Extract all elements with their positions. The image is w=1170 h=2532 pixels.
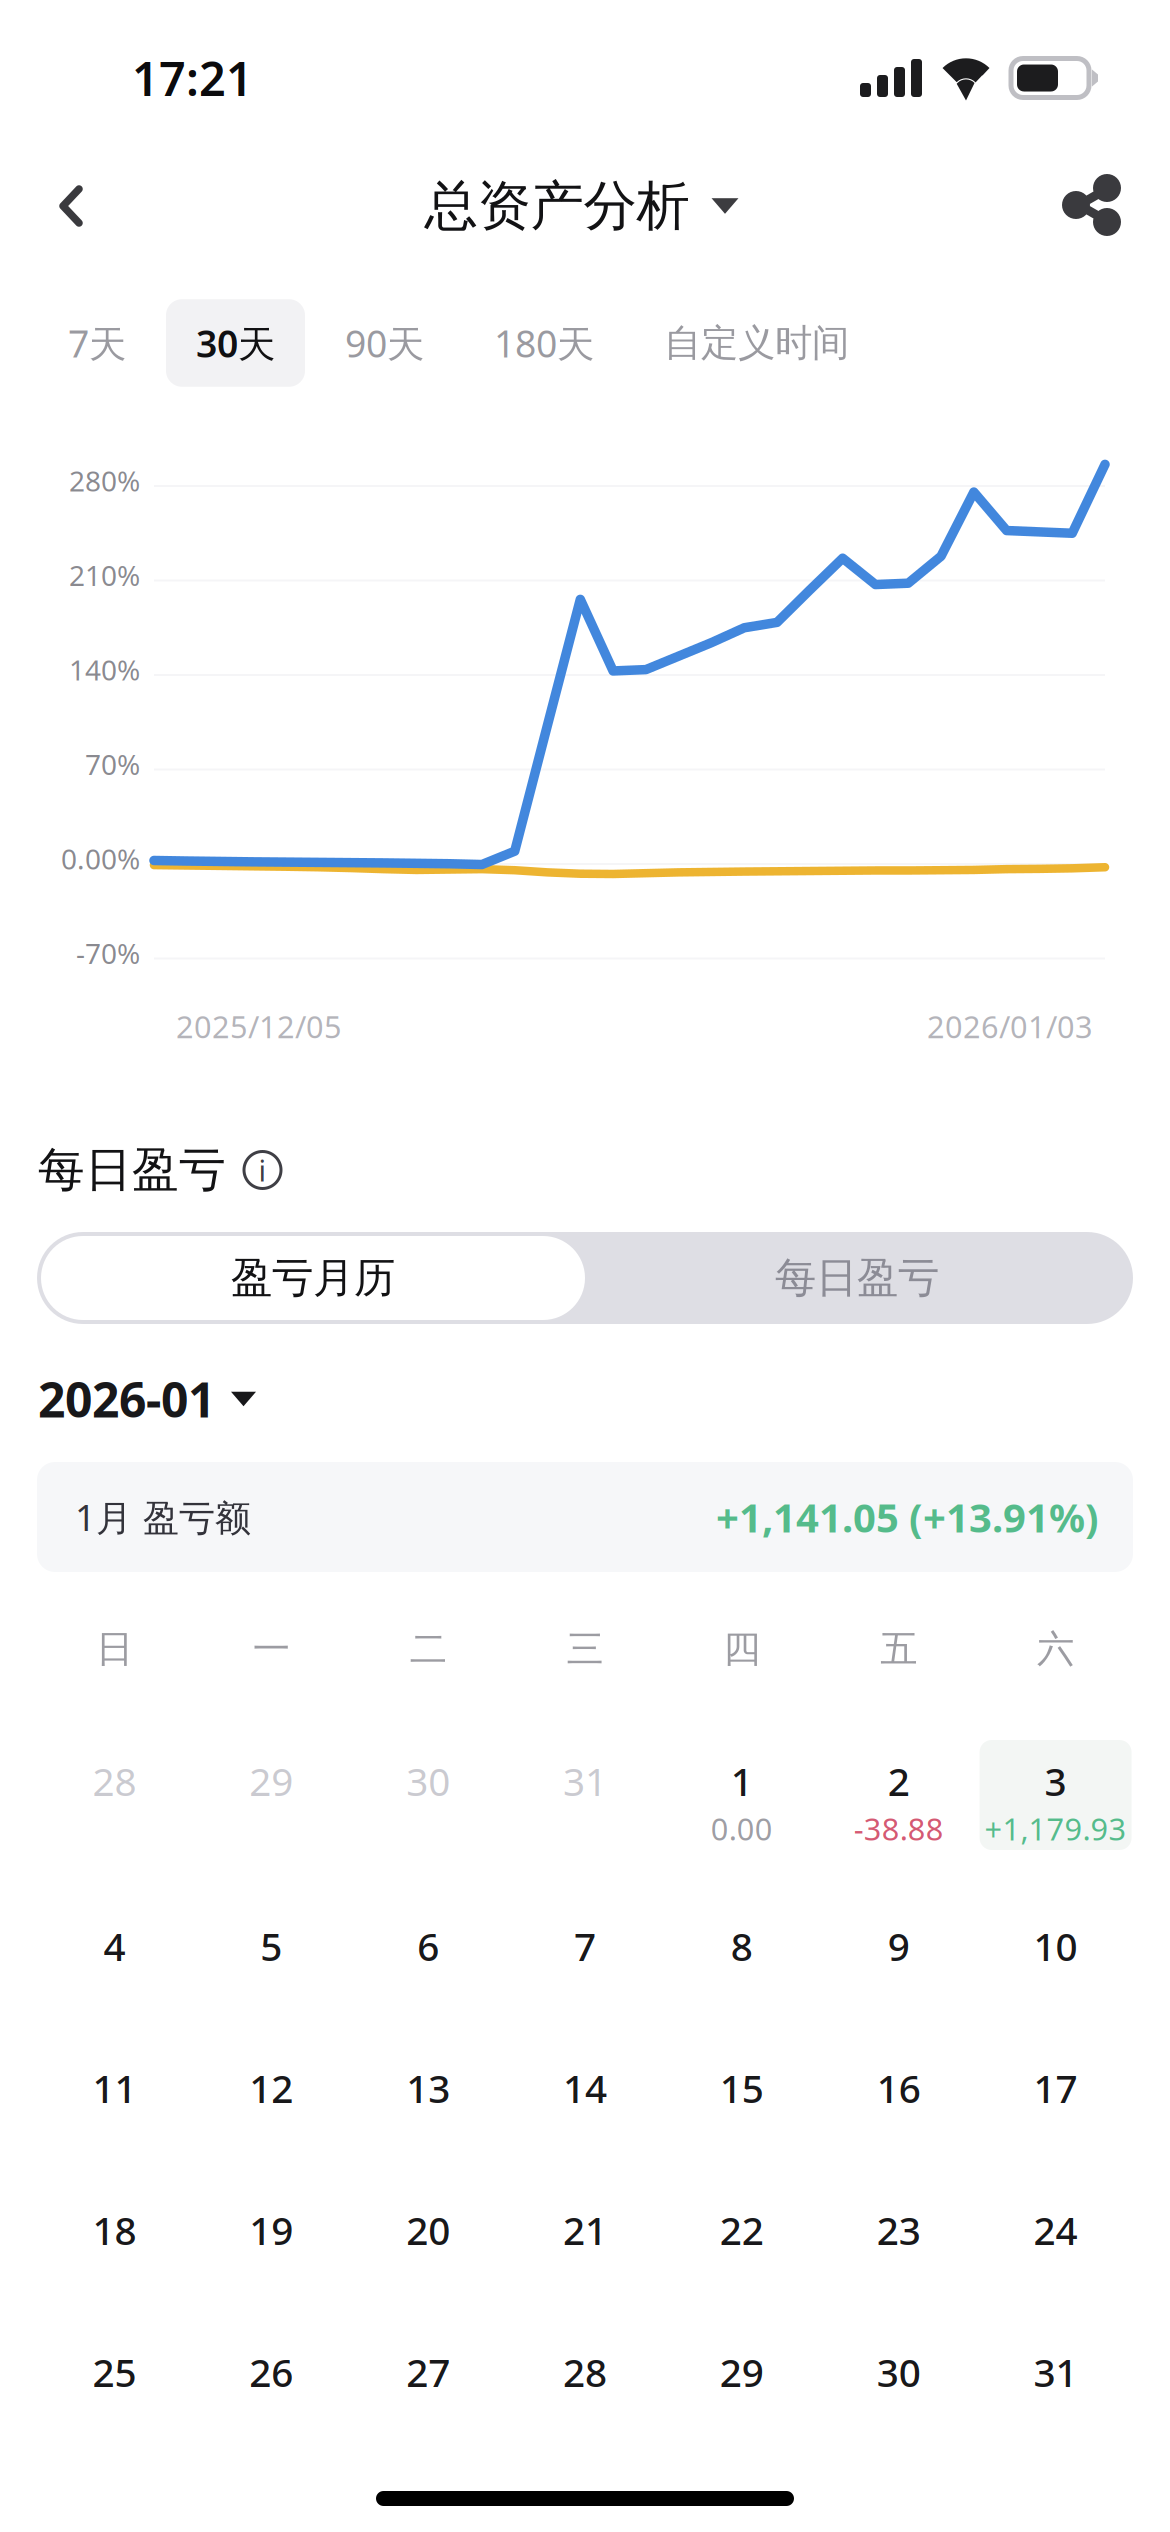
staticText: 每日盈亏: [775, 1253, 939, 1303]
staticText: 23: [877, 2204, 921, 2256]
button[interactable]: 16: [823, 2047, 975, 2157]
button[interactable]: 1: [666, 1740, 818, 1850]
button[interactable]: 31: [980, 2331, 1132, 2441]
staticText: 六: [1037, 1626, 1074, 1672]
staticText: 7天: [68, 318, 126, 368]
button[interactable]: 22: [666, 2189, 818, 2299]
button[interactable]: 20: [352, 2189, 504, 2299]
staticText: 0.00: [711, 1808, 773, 1849]
staticText: 18: [92, 2204, 136, 2256]
button[interactable]: Back: [21, 156, 121, 256]
staticText: 11: [92, 2062, 136, 2114]
staticText: 20: [406, 2204, 450, 2256]
button[interactable]: 14: [509, 2047, 661, 2157]
staticText: 自定义时间: [664, 320, 849, 366]
button[interactable]: 21: [509, 2189, 661, 2299]
staticText: 8: [731, 1920, 753, 1972]
staticText: 29: [720, 2346, 764, 2398]
staticText: +1,179.93: [985, 1808, 1127, 1849]
staticText: 13: [406, 2062, 450, 2114]
staticText: 22: [720, 2204, 764, 2256]
button[interactable]: 自定义时间: [634, 301, 879, 385]
button[interactable]: 9: [823, 1905, 975, 2015]
staticText: -38.88: [854, 1808, 944, 1849]
staticText: i: [258, 1150, 266, 1189]
button[interactable]: 4: [38, 1905, 190, 2015]
staticText: 31: [1034, 2346, 1078, 2398]
staticText: 90天: [345, 318, 424, 368]
button[interactable]: 7天: [38, 299, 156, 387]
button[interactable]: 3: [980, 1740, 1132, 1850]
staticText: 28: [92, 1755, 136, 1807]
button[interactable]: 28: [509, 2331, 661, 2441]
button[interactable]: 29: [195, 1740, 347, 1850]
button[interactable]: 6: [352, 1905, 504, 2015]
staticText: 26: [249, 2346, 293, 2398]
staticText: 24: [1034, 2204, 1078, 2256]
button[interactable]: 30天: [166, 299, 305, 387]
button[interactable]: 8: [666, 1905, 818, 2015]
button[interactable]: 23: [823, 2189, 975, 2299]
button[interactable]: 12: [195, 2047, 347, 2157]
staticText: 280%: [69, 462, 140, 499]
button[interactable]: 19: [195, 2189, 347, 2299]
button[interactable]: 2: [823, 1740, 975, 1850]
button[interactable]: 90天: [315, 299, 454, 387]
button[interactable]: 13: [352, 2047, 504, 2157]
button[interactable]: 26: [195, 2331, 347, 2441]
staticText: 0.00%: [61, 840, 140, 877]
button[interactable]: 11: [38, 2047, 190, 2157]
button[interactable]: 25: [38, 2331, 190, 2441]
button[interactable]: 31: [509, 1740, 661, 1850]
button[interactable]: 17: [980, 2047, 1132, 2157]
staticText: 9: [888, 1920, 910, 1972]
button[interactable]: 27: [352, 2331, 504, 2441]
staticText: 30天: [196, 318, 275, 368]
staticText: 28: [563, 2346, 607, 2398]
staticText: -70%: [76, 934, 140, 972]
staticText: 180天: [494, 318, 594, 368]
staticText: +1,141.05 (+13.91%): [716, 1490, 1099, 1543]
staticText: 总资产分析: [424, 173, 689, 239]
button[interactable]: 28: [38, 1740, 190, 1850]
button[interactable]: 30: [352, 1740, 504, 1850]
staticText: 五: [880, 1626, 917, 1672]
staticText: 2025/12/05: [176, 1006, 342, 1047]
button[interactable]: 2026-01: [38, 1377, 1170, 1421]
staticText: 30: [877, 2346, 921, 2398]
staticText: 7: [574, 1920, 596, 1972]
staticText: 30: [406, 1755, 450, 1807]
staticText: 二: [410, 1626, 447, 1672]
staticText: 17: [1034, 2062, 1078, 2114]
button[interactable]: 180天: [464, 299, 624, 387]
staticText: 10: [1034, 1920, 1078, 1972]
button[interactable]: Share: [1042, 156, 1142, 256]
button[interactable]: 24: [980, 2189, 1132, 2299]
staticText: 140%: [69, 651, 140, 688]
staticText: 6: [417, 1920, 439, 1972]
staticText: 14: [563, 2062, 607, 2114]
staticText: 31: [563, 1755, 607, 1807]
staticText: 70%: [85, 745, 140, 783]
staticText: 17:21: [132, 47, 253, 109]
button[interactable]: 10: [980, 1905, 1132, 2015]
staticText: 日: [96, 1626, 133, 1672]
button[interactable]: 5: [195, 1905, 347, 2015]
button[interactable]: 15: [666, 2047, 818, 2157]
button[interactable]: 盈亏月历: [41, 1236, 585, 1320]
staticText: 2026-01: [38, 1367, 215, 1431]
button[interactable]: 29: [666, 2331, 818, 2441]
button[interactable]: 30: [823, 2331, 975, 2441]
staticText: 5: [260, 1920, 282, 1972]
button[interactable]: 每日盈亏: [585, 1236, 1129, 1320]
staticText: 四: [723, 1626, 760, 1672]
button[interactable]: 总资产分析: [424, 156, 738, 256]
staticText: 三: [566, 1626, 603, 1672]
button[interactable]: 18: [38, 2189, 190, 2299]
staticText: 1: [731, 1755, 753, 1807]
staticText: 盈亏月历: [231, 1253, 395, 1303]
staticText: 2026/01/03: [927, 1006, 1093, 1047]
staticText: 27: [406, 2346, 450, 2398]
button[interactable]: 7: [509, 1905, 661, 2015]
staticText: 15: [720, 2062, 764, 2114]
